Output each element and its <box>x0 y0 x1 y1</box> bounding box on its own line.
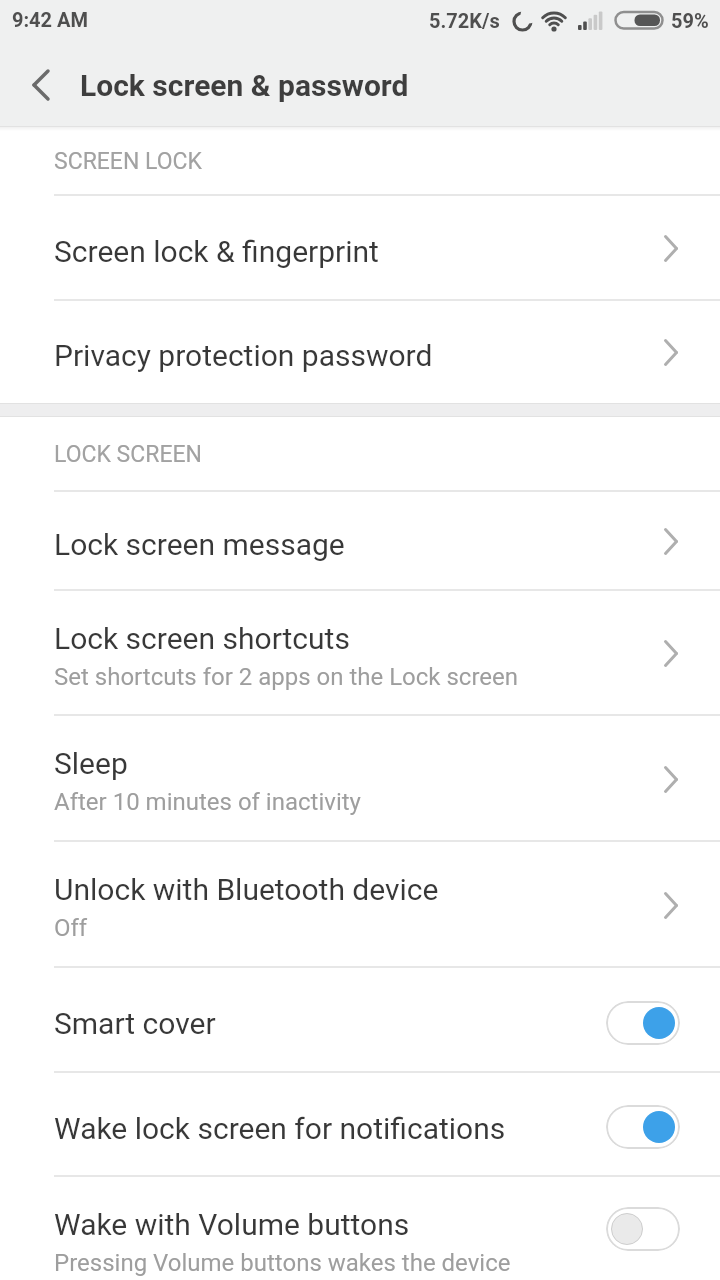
button[interactable]: Lock screen message <box>0 492 720 591</box>
staticText: 9:42 AM <box>12 8 89 31</box>
button[interactable] <box>606 1207 680 1251</box>
staticText: Wake lock screen for notifications <box>54 1111 506 1146</box>
staticText: Set shortcuts for 2 apps on the Lock scr… <box>54 663 519 691</box>
staticText: Screen lock & fingerprint <box>54 234 379 269</box>
button[interactable]: Unlock with Bluetooth device <box>0 842 720 968</box>
staticText: Unlock with Bluetooth device <box>54 872 439 907</box>
button[interactable]: Sleep <box>0 716 720 842</box>
staticText: Off <box>54 914 88 942</box>
button[interactable] <box>606 1105 680 1149</box>
button[interactable] <box>16 60 66 110</box>
button[interactable]: Privacy protection password <box>0 301 720 403</box>
staticText: SCREEN LOCK <box>54 148 202 175</box>
button[interactable]: Wake with Volume buttons <box>0 1177 720 1280</box>
button[interactable] <box>606 1001 680 1045</box>
staticText: Smart cover <box>54 1006 216 1041</box>
button[interactable]: Screen lock & fingerprint <box>0 196 720 301</box>
staticText: Privacy protection password <box>54 338 433 373</box>
staticText: Sleep <box>54 746 128 781</box>
button[interactable]: Smart cover <box>0 968 720 1073</box>
staticText: Lock screen & password <box>80 68 409 103</box>
staticText: After 10 minutes of inactivity <box>54 788 361 816</box>
staticText: 59% <box>671 9 709 32</box>
staticText: Pressing Volume buttons wakes the device <box>54 1249 511 1277</box>
button[interactable]: Wake lock screen for notifications <box>0 1073 720 1177</box>
staticText: Lock screen message <box>54 527 345 562</box>
staticText: 5.72K/s <box>429 9 500 32</box>
staticText: Lock screen shortcuts <box>54 621 350 656</box>
staticText: LOCK SCREEN <box>54 441 202 468</box>
button[interactable]: Lock screen shortcuts <box>0 591 720 716</box>
staticText: Wake with Volume buttons <box>54 1207 410 1242</box>
